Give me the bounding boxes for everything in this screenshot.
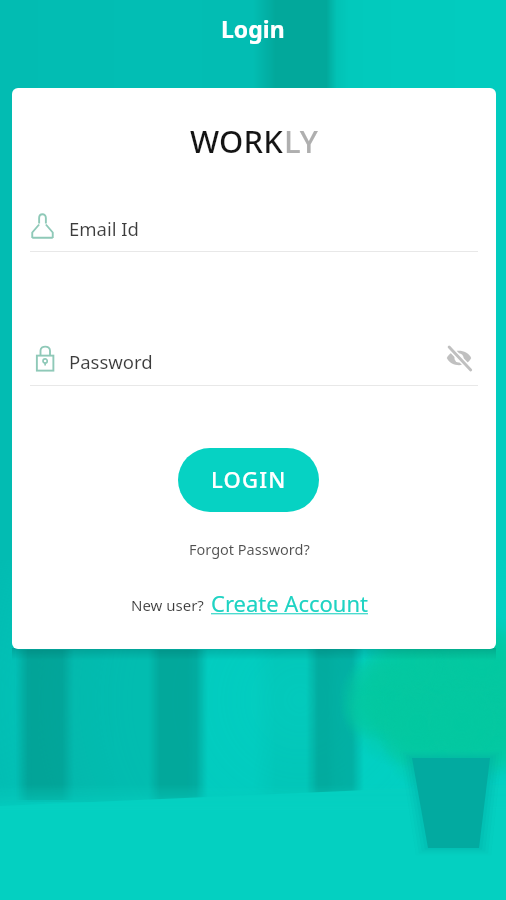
button[interactable]: Create Account [211, 588, 368, 618]
staticText: WORK [190, 120, 284, 162]
button[interactable]: Forgot Password? [185, 535, 314, 563]
button[interactable]: LOGIN [178, 448, 319, 512]
button[interactable]: Show password [443, 343, 475, 373]
staticText: Password [69, 349, 153, 374]
staticText: LOGIN [211, 464, 287, 494]
staticText: LY [284, 120, 319, 162]
staticText: Login [221, 13, 285, 44]
staticText: New user? [131, 595, 204, 615]
staticText: Email Id [69, 216, 139, 241]
